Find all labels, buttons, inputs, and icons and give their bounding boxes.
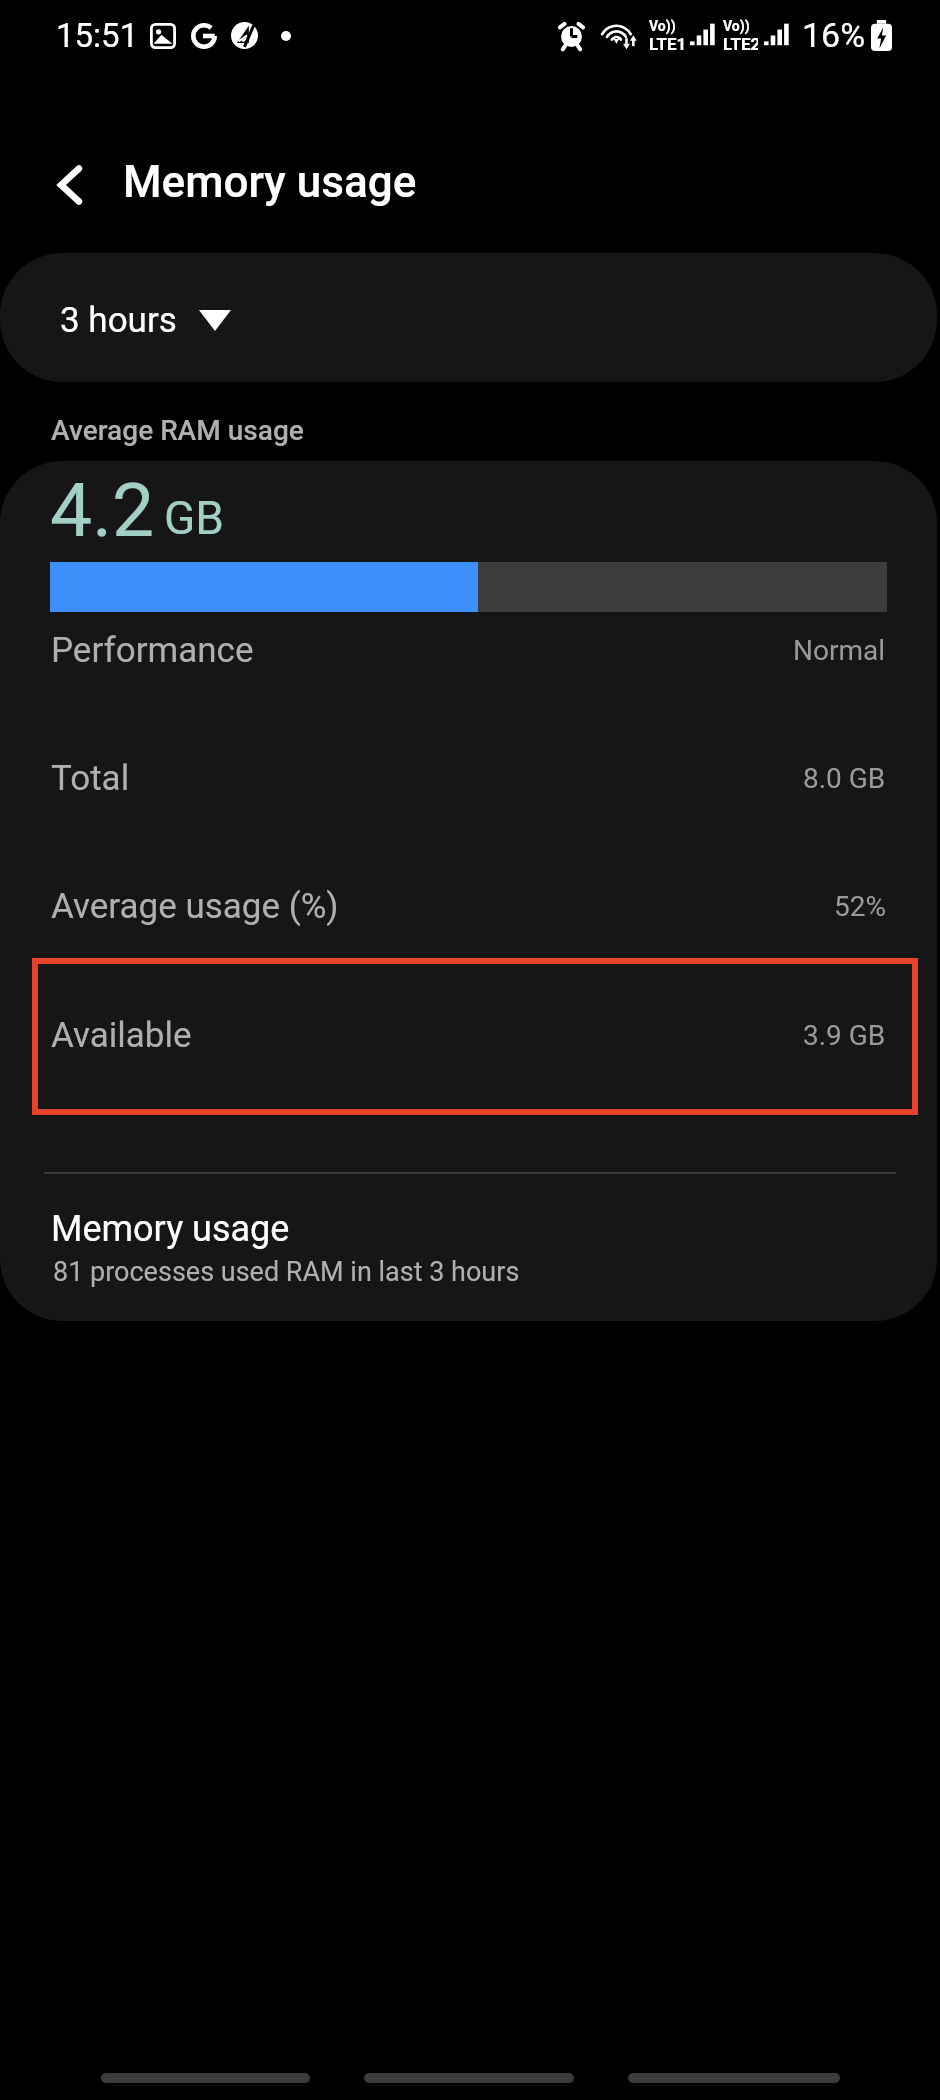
button[interactable]: Average usage (%) <box>0 846 937 966</box>
staticText: 3.9 GB <box>803 1019 886 1052</box>
staticText: GB <box>164 491 224 545</box>
button[interactable]: Back <box>628 2073 840 2083</box>
button[interactable]: Back <box>27 142 113 228</box>
staticText: Vo)) <box>649 18 676 34</box>
button[interactable]: Recent apps <box>101 2073 310 2083</box>
staticText: Memory usage <box>51 1208 290 1250</box>
button[interactable]: Total <box>0 718 937 838</box>
staticText: 16% <box>802 15 866 55</box>
staticText: Total <box>51 758 130 799</box>
staticText: Average RAM usage <box>51 414 304 447</box>
button[interactable]: Performance <box>0 590 937 710</box>
staticText: 52% <box>834 890 886 923</box>
button[interactable]: 3 hours <box>0 253 937 382</box>
staticText: 81 processes used RAM in last 3 hours <box>53 1256 520 1288</box>
staticText: 15:51 <box>56 16 139 55</box>
staticText: Average usage (%) <box>51 886 339 927</box>
staticText: 3 hours <box>60 300 177 341</box>
staticText: LTE2 <box>723 34 758 54</box>
button[interactable]: Available <box>0 975 937 1095</box>
staticText: Performance <box>51 630 254 671</box>
button[interactable]: Home <box>364 2073 574 2083</box>
staticText: Vo)) <box>723 18 750 34</box>
staticText: LTE1 <box>649 34 684 54</box>
staticText: Available <box>51 1015 192 1056</box>
staticText: 8.0 GB <box>803 762 886 795</box>
staticText: Memory usage <box>123 156 417 208</box>
button[interactable]: Memory usage <box>0 1183 937 1315</box>
staticText: 4.2 <box>50 466 155 554</box>
staticText: Normal <box>793 634 886 667</box>
